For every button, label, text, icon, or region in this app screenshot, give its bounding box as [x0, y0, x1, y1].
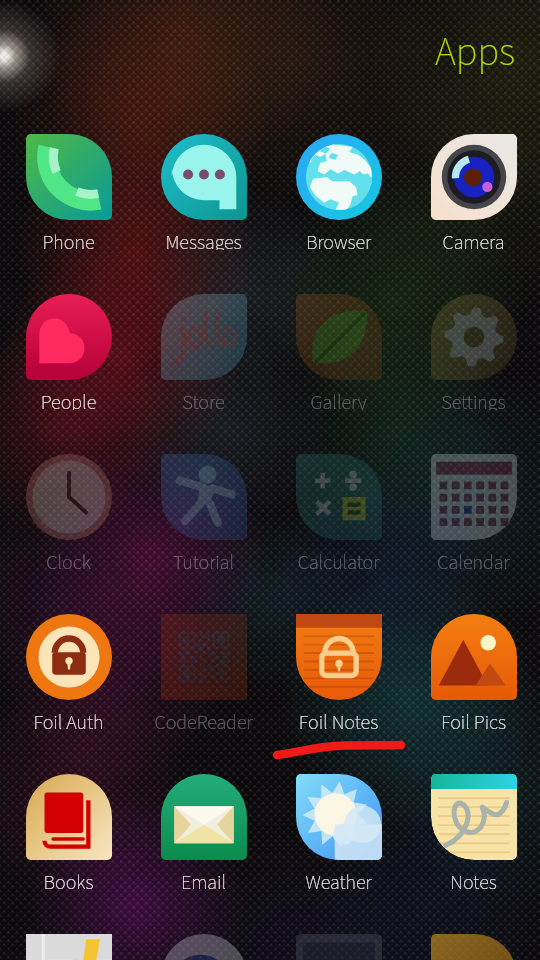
staticText: Camera [406, 229, 540, 250]
staticText: Phone [1, 229, 136, 250]
button[interactable]: Foil Notes [271, 614, 406, 730]
staticText: CodeReader [136, 709, 271, 730]
staticText: People [1, 389, 136, 410]
button[interactable]: Store [136, 294, 271, 410]
staticText: Email [136, 869, 271, 890]
button[interactable]: Maps [1, 934, 136, 960]
button[interactable]: Camera [406, 134, 540, 250]
button[interactable]: Foil Auth [1, 614, 136, 730]
button[interactable]: Weather [271, 774, 406, 890]
button[interactable]: Notes [406, 774, 540, 890]
button[interactable]: CodeReader [136, 614, 271, 730]
staticText: Weather [271, 869, 406, 890]
button[interactable]: Email [136, 774, 271, 890]
staticText: Calculator [271, 549, 406, 570]
staticText: Apps [435, 24, 515, 81]
button[interactable]: People [1, 294, 136, 410]
button[interactable]: Clock [1, 454, 136, 570]
button[interactable]: Foil Pics [406, 614, 540, 730]
button[interactable]: Tutorial [136, 454, 271, 570]
staticText: Foil Pics [406, 709, 540, 730]
staticText: Messages [136, 229, 271, 250]
staticText: Browser [271, 229, 406, 250]
button[interactable]: Phone [1, 134, 136, 250]
staticText: Settings [406, 389, 540, 410]
staticText: Foil Auth [1, 709, 136, 730]
staticText: Tutorial [136, 549, 271, 570]
staticText: Clock [1, 549, 136, 570]
staticText: Gallery [271, 389, 406, 410]
button[interactable]: Calendar [406, 454, 540, 570]
staticText: Notes [406, 869, 540, 890]
button[interactable]: Gallery [271, 294, 406, 410]
button[interactable]: Screen [271, 934, 406, 960]
staticText: Calendar [406, 549, 540, 570]
button[interactable]: Amber [406, 934, 540, 960]
button[interactable]: Browser [271, 134, 406, 250]
button[interactable]: Docs [136, 934, 271, 960]
button[interactable]: Settings [406, 294, 540, 410]
button[interactable]: Calculator [271, 454, 406, 570]
button[interactable]: Messages [136, 134, 271, 250]
staticText: Store [136, 389, 271, 410]
staticText: Books [1, 869, 136, 890]
staticText: Foil Notes [271, 709, 406, 730]
button[interactable]: Books [1, 774, 136, 890]
